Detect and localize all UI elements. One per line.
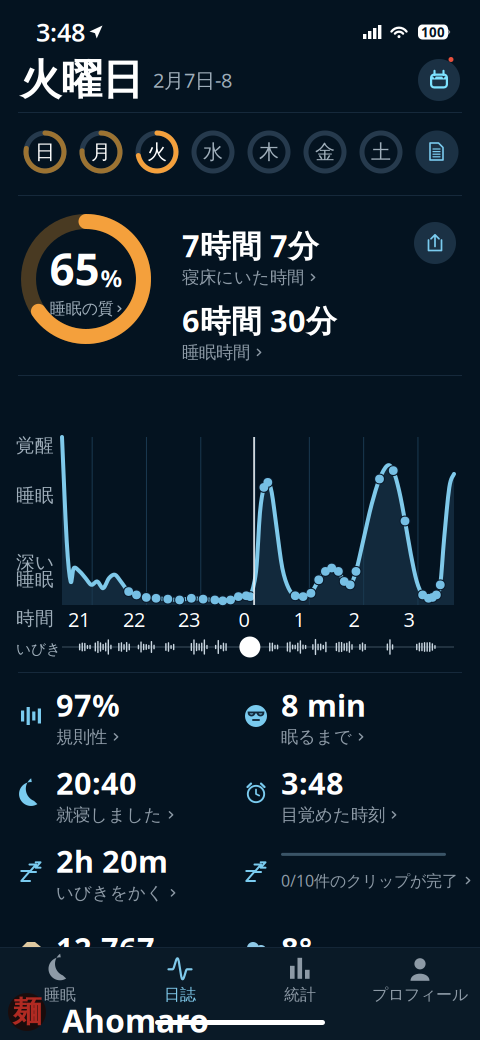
staticText: 睡眠の質: [50, 299, 114, 319]
button[interactable]: 7時間 7分: [182, 225, 319, 288]
staticText: 火: [147, 140, 167, 164]
staticText: 睡眠時間: [182, 342, 250, 363]
button[interactable]: Notes: [409, 128, 465, 176]
staticText: 眠るまで: [281, 726, 352, 747]
staticText: 3:48: [36, 15, 85, 49]
staticText: 睡眠: [16, 568, 54, 591]
staticText: 8 min: [281, 684, 366, 725]
staticText: 20:40: [56, 762, 137, 803]
staticText: 火曜日: [20, 55, 143, 105]
staticText: 7時間 7分: [182, 225, 319, 266]
staticText: 金: [315, 140, 335, 164]
staticText: 寝床にいた時間: [182, 267, 304, 288]
button[interactable]: 木: [241, 128, 297, 176]
staticText: 時間: [16, 607, 54, 630]
staticText: 覚醒: [16, 434, 54, 457]
staticText: 12,767: [56, 928, 155, 968]
staticText: 2: [348, 606, 359, 633]
staticText: 3:48: [281, 762, 344, 803]
staticText: 規則性: [56, 726, 107, 747]
button[interactable]: 65: [19, 212, 153, 346]
staticText: 6時間 30分: [182, 300, 337, 341]
staticText: いびき: [16, 640, 61, 658]
staticText: 就寝しました: [56, 804, 162, 825]
staticText: 3: [403, 606, 414, 633]
button[interactable]: 金: [297, 128, 353, 176]
staticText: 21: [68, 606, 90, 633]
staticText: 1: [293, 606, 304, 633]
button[interactable]: 土: [353, 128, 409, 176]
staticText: プロフィール: [372, 985, 468, 1004]
button[interactable]: 日: [17, 128, 73, 176]
staticText: 睡眠: [16, 484, 54, 507]
button[interactable]: 12,767: [18, 918, 234, 978]
staticText: 97%: [56, 684, 120, 725]
button[interactable]: 水: [185, 128, 241, 176]
button[interactable]: 8 min: [243, 686, 459, 746]
button[interactable]: Calendar: [418, 59, 460, 101]
staticText: いびきをかく: [56, 882, 164, 903]
staticText: 0: [238, 606, 249, 633]
staticText: 麺: [12, 994, 41, 1030]
button[interactable]: Share: [414, 222, 456, 264]
staticText: 月: [91, 140, 111, 164]
staticText: 木: [259, 140, 279, 164]
staticText: 8°: [281, 928, 312, 968]
staticText: 22: [123, 606, 145, 633]
staticText: 23: [178, 606, 200, 633]
staticText: Ahomaro: [62, 999, 209, 1040]
staticText: 水: [203, 140, 223, 164]
staticText: 目覚めた時刻: [281, 804, 385, 825]
button[interactable]: 統計: [240, 948, 360, 1008]
button[interactable]: 月: [73, 128, 129, 176]
button[interactable]: 2h 20m: [18, 842, 234, 902]
staticText: %: [100, 262, 122, 294]
staticText: 2月7日-8: [153, 67, 232, 93]
staticText: 0/10件のクリップが完了: [281, 870, 458, 891]
button[interactable]: 6時間 30分: [182, 300, 337, 363]
staticText: 100: [421, 23, 445, 41]
button[interactable]: プロフィール: [360, 948, 480, 1008]
button[interactable]: 3:48: [243, 764, 459, 824]
staticText: 統計: [284, 985, 316, 1004]
button[interactable]: 火: [129, 128, 185, 176]
staticText: 2h 20m: [56, 840, 168, 881]
button[interactable]: 睡眠: [0, 948, 120, 1008]
staticText: 睡眠: [44, 985, 76, 1004]
staticText: 深い: [16, 551, 54, 574]
button[interactable]: 20:40: [18, 764, 234, 824]
staticText: 65: [49, 239, 99, 298]
staticText: 日誌: [164, 985, 196, 1004]
button[interactable]: 0/10件のクリップが完了: [243, 842, 479, 902]
button[interactable]: 8°: [243, 918, 459, 978]
staticText: 土: [371, 140, 391, 164]
staticText: 日: [35, 140, 55, 164]
button[interactable]: 日誌: [120, 948, 240, 1008]
button[interactable]: 97%: [18, 686, 234, 746]
